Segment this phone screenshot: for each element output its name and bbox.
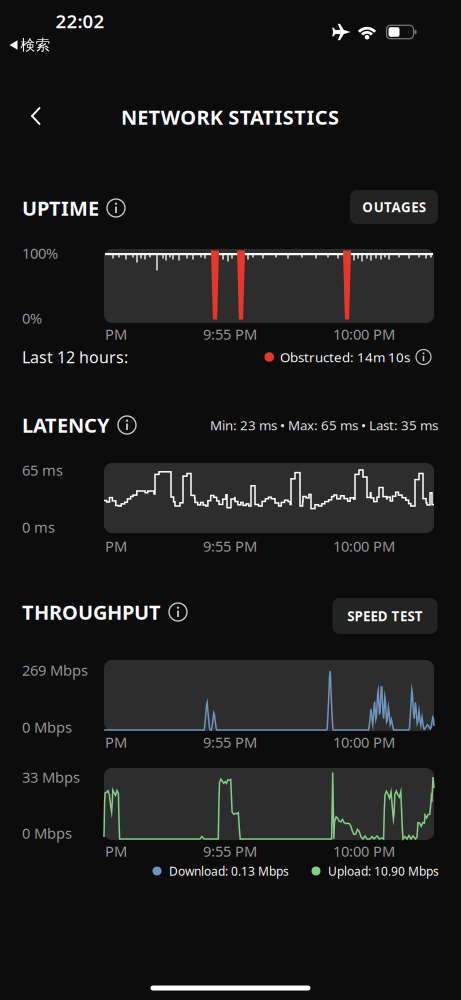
button[interactable]: OUTAGES [350, 190, 438, 224]
staticText: 9:55 PM [203, 841, 257, 861]
staticText: Obstructed: 14m 10s [280, 348, 410, 366]
staticText: Min: 23 ms • Max: 65 ms • Last: 35 ms [210, 416, 438, 434]
button[interactable]: Back [22, 98, 49, 133]
staticText: 65 ms [22, 460, 63, 480]
staticText: LATENCY [22, 412, 110, 438]
button[interactable]: SPEED TEST [332, 598, 437, 634]
staticText: 9:55 PM [203, 732, 257, 752]
button[interactable]: Uptime info [107, 199, 125, 217]
button[interactable]: Back to 検索 [9, 36, 50, 54]
staticText: 0 Mbps [22, 717, 72, 737]
staticText: PM [105, 841, 127, 861]
button[interactable]: Obstruction info [416, 349, 431, 364]
staticText: 検索 [20, 36, 50, 54]
staticText: Download: 0.13 Mbps [169, 863, 289, 879]
staticText: Last 12 hours: [22, 346, 128, 368]
staticText: 0 Mbps [22, 823, 72, 843]
staticText: THROUGHPUT [22, 599, 161, 625]
staticText: 0 ms [22, 517, 55, 537]
staticText: 33 Mbps [22, 767, 80, 787]
staticText: UPTIME [22, 195, 99, 221]
staticText: PM [105, 324, 127, 344]
staticText: 10:00 PM [333, 841, 395, 861]
staticText: 269 Mbps [22, 660, 88, 680]
staticText: 10:00 PM [333, 324, 395, 344]
staticText: 0% [22, 308, 42, 328]
staticText: Upload: 10.90 Mbps [328, 863, 439, 879]
staticText: 9:55 PM [203, 536, 257, 556]
button[interactable]: Latency info [118, 416, 136, 434]
staticText: PM [105, 536, 127, 556]
staticText: 100% [22, 243, 58, 263]
staticText: 10:00 PM [333, 536, 395, 556]
staticText: 22:02 [55, 9, 104, 33]
staticText: PM [105, 732, 127, 752]
staticText: 9:55 PM [203, 324, 257, 344]
button[interactable]: Throughput info [169, 603, 187, 621]
staticText: OUTAGES [362, 198, 426, 216]
staticText: NETWORK STATISTICS [121, 104, 339, 130]
staticText: SPEED TEST [347, 607, 423, 625]
staticText: 10:00 PM [333, 732, 395, 752]
